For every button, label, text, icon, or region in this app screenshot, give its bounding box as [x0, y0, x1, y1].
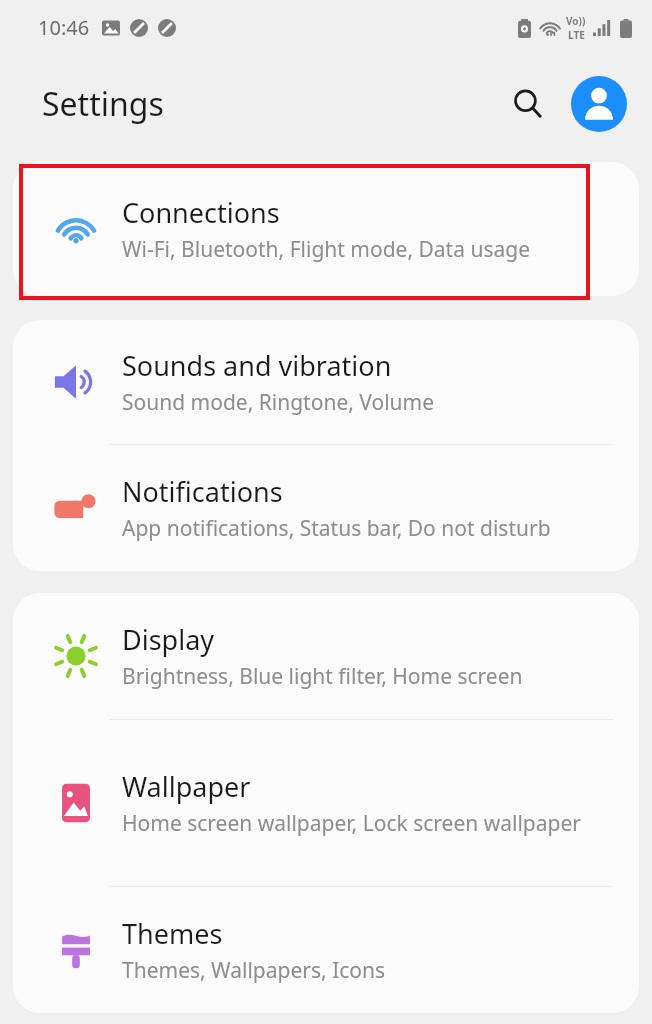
staticText: Settings: [42, 82, 164, 126]
staticText: Notifications: [122, 473, 283, 510]
staticText: Themes: [122, 915, 223, 952]
button[interactable]: Notifications: [13, 445, 639, 571]
staticText: App notifications, Status bar, Do not di…: [122, 514, 551, 543]
button[interactable]: Connections: [13, 162, 639, 296]
button[interactable]: Themes: [13, 887, 639, 1013]
staticText: Themes, Wallpapers, Icons: [122, 956, 386, 985]
button[interactable]: Search: [503, 79, 553, 129]
staticText: Home screen wallpaper, Lock screen wallp…: [122, 809, 581, 838]
staticText: Wi-Fi, Bluetooth, Flight mode, Data usag…: [122, 235, 531, 264]
staticText: 10:46: [38, 14, 90, 41]
staticText: Wallpaper: [122, 768, 251, 805]
button[interactable]: Account profile: [571, 76, 627, 132]
staticText: Brightness, Blue light filter, Home scre…: [122, 662, 523, 691]
staticText: Vo)): [566, 14, 586, 28]
staticText: LTE: [568, 28, 585, 42]
staticText: Sounds and vibration: [122, 347, 392, 384]
button[interactable]: Display: [13, 593, 639, 719]
staticText: Sound mode, Ringtone, Volume: [122, 388, 435, 417]
staticText: Connections: [122, 194, 280, 231]
button[interactable]: Wallpaper: [13, 720, 639, 886]
button[interactable]: Sounds and vibration: [13, 320, 639, 444]
staticText: Display: [122, 621, 215, 658]
